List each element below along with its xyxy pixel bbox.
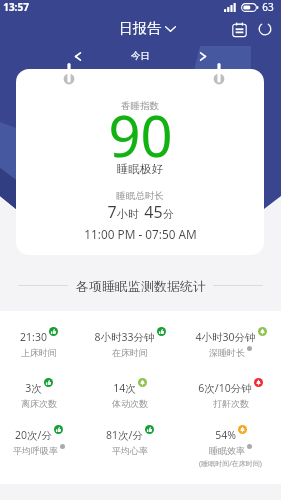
button[interactable]: 8小时33分钟: [83, 327, 176, 358]
staticText: 小时: [117, 207, 139, 221]
button[interactable]: 54%: [184, 425, 277, 469]
staticText: 平均心率: [112, 445, 148, 456]
button[interactable]: 21:30: [0, 327, 85, 358]
staticText: 打鼾次数: [213, 398, 249, 409]
button[interactable]: Next day: [193, 46, 213, 66]
button[interactable]: 今日: [127, 46, 154, 66]
staticText: 体动次数: [112, 398, 148, 409]
staticText: 7: [107, 201, 117, 223]
staticText: 平均呼吸率: [13, 445, 58, 456]
staticText: 63: [262, 0, 274, 14]
button[interactable]: 6次/10分钟: [184, 378, 277, 409]
staticText: 睡眠极好: [117, 162, 163, 176]
button[interactable]: Previous day: [68, 46, 88, 66]
staticText: 深睡时长: [209, 347, 245, 358]
button[interactable]: 14次: [83, 378, 176, 409]
staticText: 离床次数: [21, 398, 57, 409]
staticText: 20次/分: [15, 428, 52, 442]
button[interactable]: 4小时30分钟: [184, 327, 277, 358]
staticText: 6次/10分钟: [198, 381, 252, 395]
staticText: 13:57: [3, 0, 29, 14]
button[interactable]: 81次/分: [83, 425, 176, 456]
staticText: 81次/分: [106, 428, 143, 442]
button[interactable]: 日报告: [115, 18, 180, 40]
button[interactable]: 3次: [0, 378, 85, 409]
button[interactable]: Refresh: [253, 17, 277, 41]
button[interactable]: Report: [227, 17, 251, 41]
button[interactable]: 20次/分: [0, 425, 85, 456]
staticText: 11:00 PM - 07:50 AM: [84, 226, 197, 242]
button[interactable]: 香睡指数: [16, 69, 264, 255]
staticText: 8小时33分钟: [94, 330, 155, 344]
staticText: 上床时间: [21, 347, 57, 358]
staticText: 21:30: [20, 330, 47, 344]
staticText: 睡眠效率: [209, 445, 245, 456]
staticText: 睡眠总时长: [116, 190, 164, 202]
staticText: 4小时30分钟: [195, 330, 256, 344]
staticText: 54%: [215, 428, 236, 442]
staticText: 各项睡眠监测数据统计: [76, 278, 206, 292]
staticText: 在床时间: [112, 347, 148, 358]
staticText: 3次: [25, 381, 42, 395]
staticText: 45: [144, 201, 163, 223]
staticText: 香睡指数: [121, 100, 159, 112]
staticText: 分: [163, 207, 174, 221]
staticText: (睡眠时间/在床时间): [199, 459, 262, 469]
staticText: 14次: [113, 381, 136, 395]
staticText: 90: [108, 97, 173, 173]
staticText: 日报告: [119, 20, 161, 38]
